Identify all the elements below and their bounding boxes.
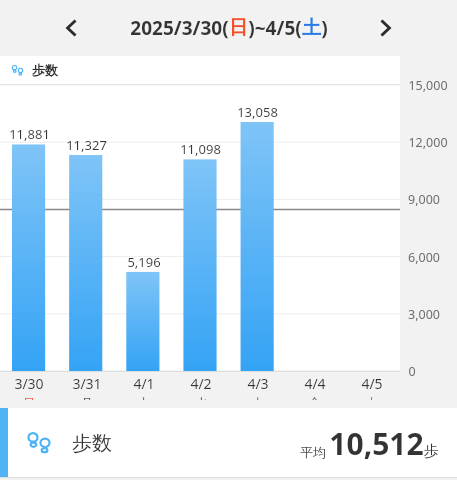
staticText: )~4/5( (248, 15, 302, 41)
staticText: 10,512 (329, 423, 424, 464)
staticText: 3,000 (408, 306, 440, 323)
staticText: 11,327 (66, 136, 107, 154)
staticText: 土 (366, 395, 378, 400)
staticText: 15,000 (408, 77, 448, 94)
staticText: 13,058 (237, 103, 278, 121)
button[interactable]: 歩数 (0, 408, 457, 478)
staticText: 水 (195, 395, 207, 400)
staticText: 3/30 (14, 374, 44, 393)
button[interactable]: 4/1 (115, 372, 172, 400)
staticText: 日 (229, 16, 248, 40)
button[interactable]: Previous week (50, 6, 94, 50)
staticText: 0 (408, 363, 416, 380)
button[interactable]: Next week (363, 6, 407, 50)
staticText: 金 (309, 395, 321, 400)
staticText: 4/4 (304, 374, 326, 393)
button[interactable]: 4/5 (343, 372, 400, 400)
staticText: 4/2 (190, 374, 212, 393)
staticText: 12,000 (408, 134, 448, 151)
staticText: 6,000 (408, 249, 440, 266)
staticText: 2025/3/30( (130, 15, 229, 41)
staticText: 土 (302, 16, 321, 40)
button[interactable]: 3/31 (58, 372, 115, 400)
staticText: 平均 (300, 444, 326, 460)
staticText: 歩数 (32, 62, 58, 78)
button[interactable]: 4/3 (229, 372, 286, 400)
button[interactable]: 3/30 (0, 372, 58, 400)
staticText: 4/1 (133, 374, 155, 393)
staticText: 木 (252, 395, 264, 400)
staticText: 月 (81, 395, 93, 400)
staticText: 4/3 (247, 374, 269, 393)
staticText: 歩数 (72, 431, 112, 456)
staticText: 9,000 (408, 191, 440, 208)
staticText: 11,098 (180, 140, 221, 158)
staticText: 歩 (424, 442, 439, 461)
button[interactable]: 4/4 (286, 372, 343, 400)
staticText: 5,196 (127, 253, 161, 271)
staticText: 4/5 (361, 374, 383, 393)
staticText: 日 (23, 395, 35, 400)
staticText: 3/31 (72, 374, 102, 393)
staticText: 火 (138, 395, 150, 400)
staticText: 11,881 (9, 125, 50, 143)
button[interactable]: 4/2 (172, 372, 229, 400)
staticText: ) (321, 15, 328, 41)
